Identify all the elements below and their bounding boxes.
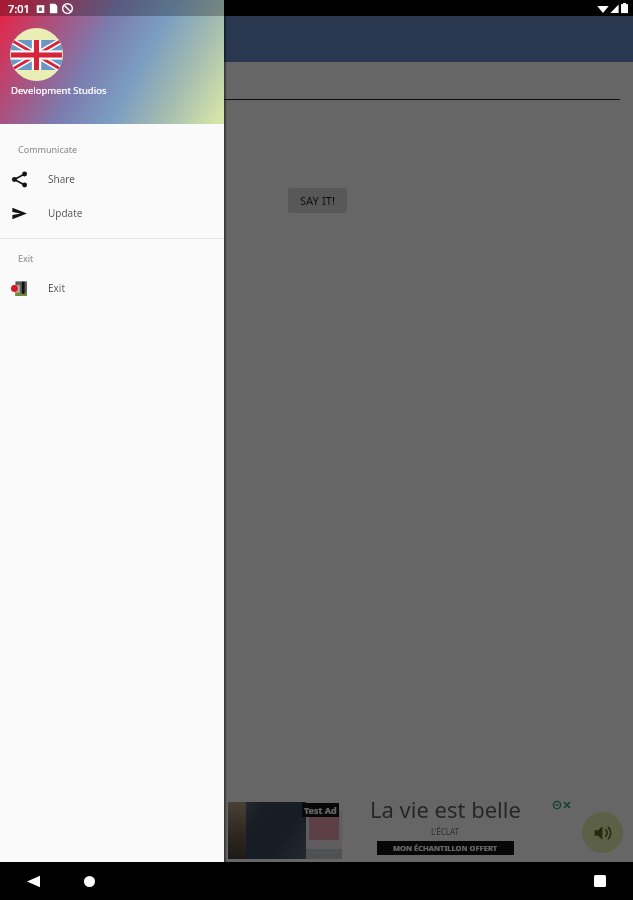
staticText: Communicate: [18, 143, 78, 155]
staticText: Exit: [18, 252, 34, 264]
staticText: Development Studios: [11, 84, 107, 97]
staticText: SAY IT!: [300, 193, 335, 208]
staticText: Exit: [48, 281, 66, 295]
button[interactable]: Back: [21, 869, 45, 893]
staticText: 7:01: [8, 1, 30, 16]
staticText: La vie est belle: [370, 794, 521, 824]
staticText: Share: [48, 172, 75, 186]
button[interactable]: Share: [0, 162, 224, 196]
staticText: MON ÉCHANTILLON OFFERT: [393, 843, 498, 853]
staticText: Test Ad: [304, 804, 337, 816]
button[interactable]: SAY IT!: [288, 188, 347, 213]
button[interactable]: Recents: [588, 869, 612, 893]
staticText: Update: [48, 206, 83, 220]
button[interactable]: Update: [0, 196, 224, 230]
staticText: L'ÉCLAT: [431, 826, 460, 837]
button[interactable]: Exit: [0, 271, 224, 305]
button[interactable]: MON ÉCHANTILLON OFFERT: [377, 841, 514, 855]
button[interactable]: Speak: [582, 812, 623, 853]
button[interactable]: Home: [77, 869, 101, 893]
